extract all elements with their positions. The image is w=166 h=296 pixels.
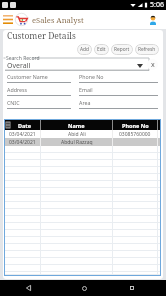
- button[interactable]: Open navigation menu: [0, 10, 15, 29]
- button[interactable]: Recent apps: [126, 282, 138, 294]
- staticText: eSales Analyst: [32, 15, 84, 25]
- staticText: Phone No: [79, 73, 104, 80]
- button[interactable]: Account: [145, 12, 160, 27]
- staticText: Add: [80, 46, 89, 53]
- staticText: Edit: [97, 46, 106, 53]
- staticText: 03/04/2021: [9, 131, 36, 138]
- staticText: Customer Details: [7, 30, 76, 42]
- staticText: Refresh: [138, 46, 156, 53]
- staticText: 03/04/2021: [9, 139, 36, 146]
- button[interactable]: Back: [22, 282, 34, 294]
- staticText: 5:06: [150, 0, 164, 10]
- staticText: Address: [7, 86, 28, 93]
- button[interactable]: Refresh: [135, 44, 159, 55]
- staticText: Area: [79, 99, 91, 106]
- button[interactable]: Add: [77, 44, 92, 55]
- staticText: CNIC: [7, 99, 20, 106]
- button[interactable]: Home: [78, 282, 90, 294]
- staticText: Phone No: [122, 122, 149, 129]
- button[interactable]: Clear search: [147, 59, 158, 70]
- button[interactable]: Email: [79, 84, 158, 96]
- button[interactable]: Area: [79, 97, 158, 109]
- staticText: Customer Name: [7, 73, 48, 80]
- staticText: Email: [79, 86, 93, 93]
- staticText: Abid Ali: [68, 131, 86, 138]
- staticText: Abdul Razzaq: [61, 139, 93, 146]
- staticText: Report: [114, 46, 130, 53]
- button[interactable]: 03/04/2021: [5, 138, 160, 146]
- button[interactable]: 03/04/2021: [5, 130, 160, 138]
- button[interactable]: Address: [7, 84, 71, 96]
- button[interactable]: Report: [111, 44, 133, 55]
- button[interactable]: Edit: [94, 44, 109, 55]
- button[interactable]: Phone No: [79, 71, 158, 83]
- staticText: Date: [18, 122, 31, 129]
- button[interactable]: CNIC: [7, 97, 71, 109]
- staticText: Name: [68, 122, 85, 129]
- staticText: 03085760000: [119, 131, 151, 138]
- staticText: x: [151, 60, 155, 70]
- staticText: Overall: [7, 61, 31, 71]
- button[interactable]: Customer Name: [7, 71, 71, 83]
- staticText: Search Record: [6, 55, 40, 62]
